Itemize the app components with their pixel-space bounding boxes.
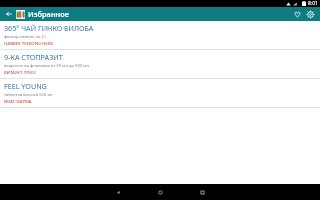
staticText: фильтр-пакеты по 2 г	[4, 34, 47, 40]
staticText: 8:01	[308, 0, 318, 7]
button[interactable]: Home	[148, 184, 172, 200]
button[interactable]: Back	[3, 8, 15, 20]
staticText: ВИТАУКТ ПЛЮС	[4, 70, 37, 76]
button[interactable]: FEEL YOUNG	[0, 79, 320, 107]
button[interactable]: Settings	[304, 8, 317, 21]
button[interactable]: Recent apps	[190, 184, 214, 200]
staticText: Избранное	[28, 9, 69, 19]
button[interactable]: Back	[106, 184, 130, 200]
button[interactable]: Favorites	[291, 8, 304, 21]
button[interactable]: 9-КА СТОПРАЗИТ	[0, 50, 320, 78]
staticText: ИНАТ-ФАРМА	[4, 99, 32, 105]
staticText: таблетки массой 500 мг	[4, 92, 53, 98]
button[interactable]: 365° ЧАЙ ГИНКО БИЛОБА	[0, 21, 320, 49]
staticText: 9-КА СТОПРАЗИТ	[4, 52, 63, 62]
staticText: FEEL YOUNG	[4, 81, 47, 91]
staticText: 365° ЧАЙ ГИНКО БИЛОБА	[4, 23, 94, 33]
staticText: HANBIN YEEKONG HERB	[4, 41, 53, 47]
staticText: жидкость во флаконах от 30 мл до 500 мл	[4, 63, 90, 69]
